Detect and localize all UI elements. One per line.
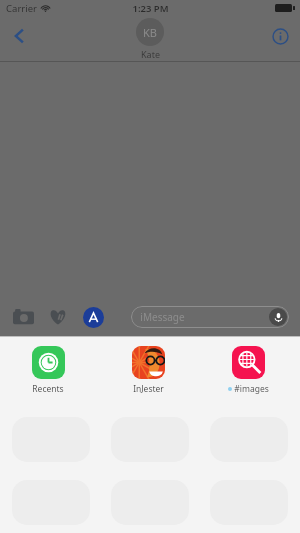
- button[interactable]: InJester: [114, 346, 182, 395]
- button[interactable]: Back: [4, 20, 36, 52]
- button[interactable]: App Store: [80, 304, 106, 330]
- staticText: #images: [234, 383, 269, 395]
- staticText: 1:23 PM: [132, 2, 169, 15]
- button[interactable]: Dictate: [269, 308, 287, 326]
- staticText: Carrier: [6, 2, 37, 15]
- button[interactable]: Details: [264, 20, 296, 52]
- button[interactable]: #images: [214, 346, 282, 395]
- button[interactable]: Recents: [14, 346, 82, 395]
- button[interactable]: KB: [136, 18, 164, 60]
- staticText: InJester: [133, 383, 164, 395]
- button[interactable]: iMessage: [131, 306, 289, 328]
- button[interactable]: Digital Touch: [45, 304, 71, 330]
- staticText: Kate: [141, 48, 160, 60]
- button[interactable]: Camera: [10, 304, 36, 330]
- staticText: Recents: [32, 383, 64, 395]
- staticText: KB: [143, 25, 157, 40]
- staticText: iMessage: [140, 310, 185, 324]
